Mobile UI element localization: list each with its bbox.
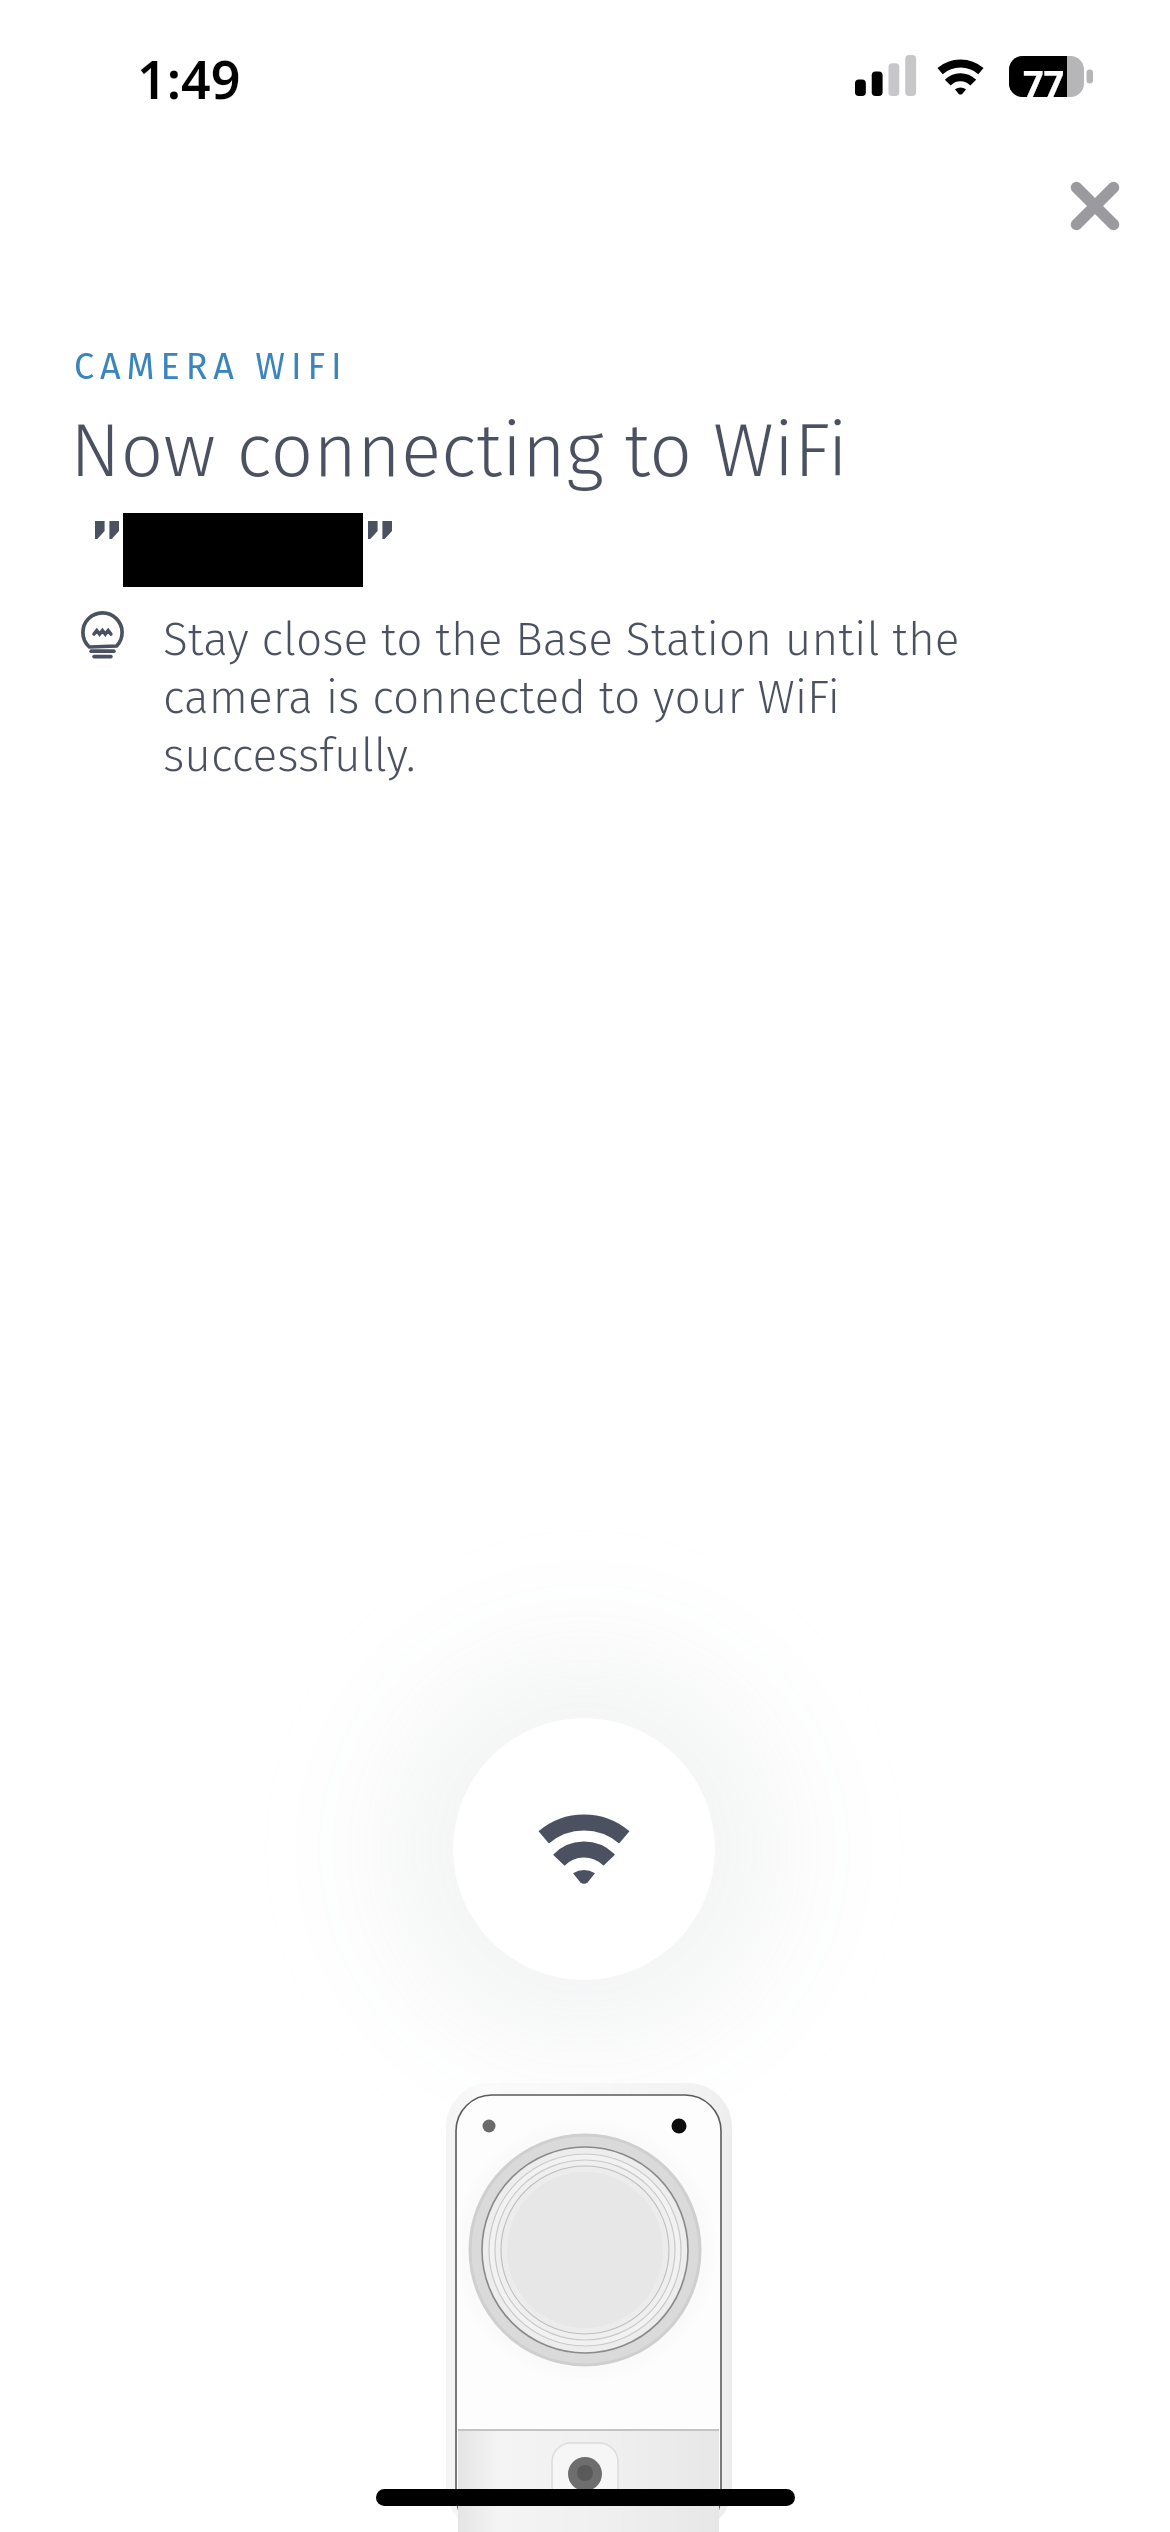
button[interactable]: Close	[1041, 152, 1149, 260]
staticText: Now connecting to WiFi	[70, 406, 848, 496]
staticText: Stay close to the Base Station until the…	[163, 612, 983, 783]
staticText: 1:49	[137, 43, 241, 114]
staticText: CAMERA WIFI	[74, 345, 348, 388]
staticText: 77	[1023, 59, 1065, 108]
